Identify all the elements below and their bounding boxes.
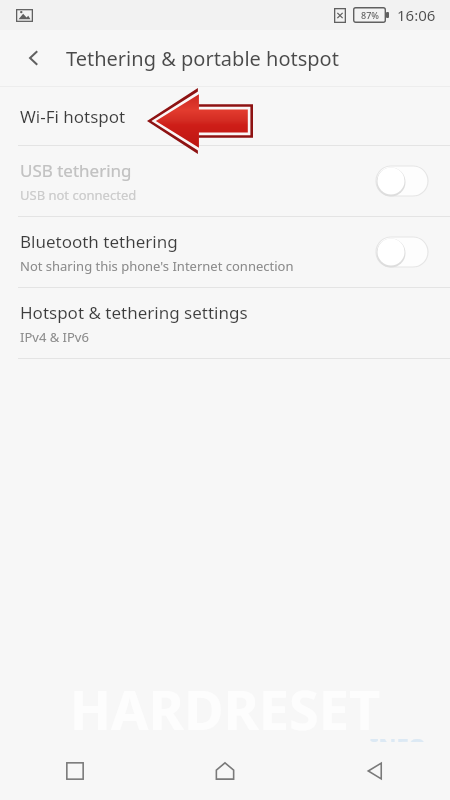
button[interactable]: Toggle: [376, 237, 428, 267]
staticText: USB not connected: [20, 186, 137, 204]
button[interactable]: Hotspot & tethering settings: [0, 288, 450, 358]
button[interactable]: Toggle: [376, 166, 428, 196]
staticText: INFO: [370, 730, 426, 760]
staticText: Hotspot & tethering settings: [20, 301, 248, 324]
button[interactable]: Home: [150, 742, 300, 800]
button[interactable]: Back: [10, 34, 58, 82]
button[interactable]: Back: [300, 742, 450, 800]
staticText: Bluetooth tethering: [20, 230, 178, 253]
staticText: Not sharing this phone's Internet connec…: [20, 257, 294, 275]
staticText: 16:06: [397, 5, 436, 25]
staticText: USB tethering: [20, 159, 132, 182]
button[interactable]: Recents: [0, 742, 150, 800]
staticText: IPv4 & IPv6: [20, 328, 89, 346]
staticText: Wi-Fi hotspot: [20, 105, 126, 128]
button[interactable]: Wi-Fi hotspot: [0, 87, 450, 145]
staticText: 87%: [361, 9, 379, 21]
button[interactable]: USB tethering: [0, 146, 450, 216]
staticText: Tethering & portable hotspot: [66, 45, 339, 72]
button[interactable]: Bluetooth tethering: [0, 217, 450, 287]
